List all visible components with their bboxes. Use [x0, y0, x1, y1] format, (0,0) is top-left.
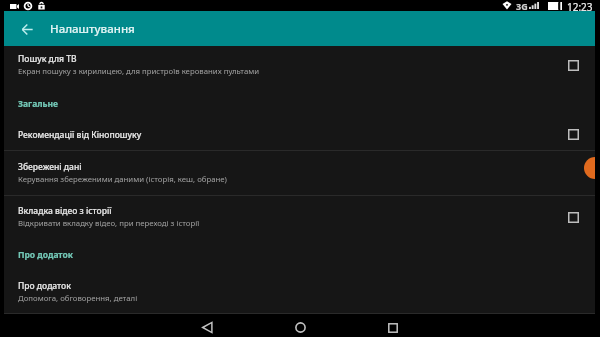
button[interactable]: Збережені дані — [4, 151, 595, 195]
staticText: Допомога, обговорення, деталі — [18, 293, 138, 304]
staticText: Відкривати вкладку відео, при переході з… — [18, 218, 200, 229]
button[interactable]: Вкладка відео з історії — [4, 196, 595, 238]
staticText: 12:23 — [567, 0, 593, 11]
staticText: Про додаток — [18, 280, 71, 292]
button[interactable]: Рекомендації від Кінопошуку — [4, 119, 595, 150]
staticText: Загальне — [18, 98, 59, 110]
button[interactable]: Back — [194, 316, 220, 337]
staticText: Пошук для ТВ — [18, 53, 77, 65]
button[interactable]: Recents — [380, 316, 406, 337]
staticText: Вкладка відео з історії — [18, 205, 112, 217]
button[interactable]: Про додаток — [4, 271, 595, 313]
button[interactable]: Home — [287, 316, 313, 337]
staticText: Рекомендації від Кінопошуку — [18, 129, 142, 141]
staticText: 3G — [516, 0, 528, 11]
staticText: Керування збереженими даними (історія, к… — [18, 174, 227, 185]
button[interactable]: Back — [16, 18, 38, 40]
staticText: Налаштування — [50, 21, 135, 37]
staticText: Збережені дані — [18, 161, 82, 173]
staticText: Екран пошуку з кирилицею, для пристроїв … — [18, 66, 260, 77]
staticText: Про додаток — [18, 249, 74, 261]
button[interactable]: Пошук для ТВ — [4, 46, 595, 84]
